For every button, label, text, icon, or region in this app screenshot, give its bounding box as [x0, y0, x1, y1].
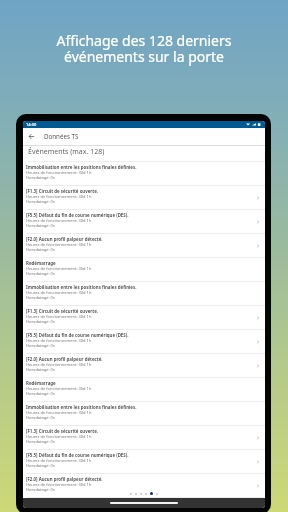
staticText: Données TS [44, 132, 79, 140]
staticText: Heures de fonctionnement: 30d 1h [26, 266, 92, 271]
button[interactable]: Immobilisation entre les positions final… [23, 402, 265, 426]
staticText: Heures de fonctionnement: 30d 1h [26, 218, 92, 223]
button[interactable]: [F1.3] Circuit de sécurité ouverte. [23, 426, 265, 450]
staticText: Horodatage: 0s [26, 439, 55, 444]
staticText: Heures de fonctionnement: 30d 1h [26, 362, 92, 367]
staticText: [F2.0] Aucun profil palpeur détecté. [26, 476, 103, 482]
staticText: [F5.5] Défaut du fin de course numérique… [26, 332, 129, 338]
staticText: Immobilisation entre les positions final… [26, 404, 137, 410]
staticText: Affichage des 128 derniers événements su… [56, 31, 232, 66]
staticText: Horodatage: 0s [26, 343, 55, 348]
staticText: Événements (max. 128) [28, 147, 105, 157]
staticText: Heures de fonctionnement: 30d 1h [26, 386, 92, 391]
staticText: Heures de fonctionnement: 30d 1h [26, 242, 92, 247]
staticText: [F5.5] Défaut du fin de course numérique… [26, 212, 129, 218]
staticText: Heures de fonctionnement: 30d 1h [26, 170, 92, 175]
button[interactable]: Immobilisation entre les positions final… [23, 282, 265, 306]
button[interactable]: [F2.0] Aucun profil palpeur détecté. [23, 354, 265, 378]
button[interactable]: [F1.3] Circuit de sécurité ouverte. [23, 186, 265, 210]
button[interactable]: Redémarrage [23, 378, 265, 402]
staticText: Horodatage: 0s [26, 223, 55, 228]
staticText: [F1.3] Circuit de sécurité ouverte. [26, 188, 99, 194]
staticText: Heures de fonctionnement: 30d 1h [26, 458, 92, 463]
staticText: Redémarrage [26, 380, 56, 386]
staticText: Horodatage: 0s [26, 487, 55, 492]
button[interactable]: [F5.5] Défaut du fin de course numérique… [23, 450, 265, 474]
staticText: Heures de fonctionnement: 30d 1h [26, 434, 92, 439]
staticText: Horodatage: 0s [26, 295, 55, 300]
staticText: Heures de fonctionnement: 30d 1h [26, 314, 92, 319]
staticText: Horodatage: 0s [26, 391, 55, 396]
button[interactable]: [F2.0] Aucun profil palpeur détecté. [23, 474, 265, 498]
staticText: [F5.5] Défaut du fin de course numérique… [26, 452, 129, 458]
staticText: [F2.0] Aucun profil palpeur détecté. [26, 236, 103, 242]
staticText: Horodatage: 0s [26, 271, 55, 276]
staticText: Heures de fonctionnement: 30d 1h [26, 194, 92, 199]
staticText: Heures de fonctionnement: 30d 1h [26, 410, 92, 415]
staticText: Immobilisation entre les positions final… [26, 284, 137, 290]
staticText: [F2.0] Aucun profil palpeur détecté. [26, 356, 103, 362]
button[interactable]: Retour [23, 128, 40, 145]
button[interactable]: [F5.5] Défaut du fin de course numérique… [23, 210, 265, 234]
staticText: 14:00 [26, 122, 37, 127]
staticText: Immobilisation entre les positions final… [26, 164, 137, 170]
staticText: Horodatage: 0s [26, 175, 55, 180]
staticText: Heures de fonctionnement: 30d 1h [26, 482, 92, 487]
button[interactable]: [F2.0] Aucun profil palpeur détecté. [23, 234, 265, 258]
staticText: Horodatage: 0s [26, 319, 55, 324]
staticText: [F1.3] Circuit de sécurité ouverte. [26, 308, 99, 314]
button[interactable]: [F1.3] Circuit de sécurité ouverte. [23, 306, 265, 330]
staticText: Heures de fonctionnement: 30d 1h [26, 290, 92, 295]
staticText: [F1.3] Circuit de sécurité ouverte. [26, 428, 99, 434]
staticText: Horodatage: 0s [26, 463, 55, 468]
staticText: Horodatage: 0s [26, 199, 55, 204]
staticText: Horodatage: 0s [26, 247, 55, 252]
button[interactable]: Immobilisation entre les positions final… [23, 162, 265, 186]
staticText: Heures de fonctionnement: 30d 1h [26, 338, 92, 343]
staticText: Horodatage: 0s [26, 367, 55, 372]
staticText: Redémarrage [26, 260, 56, 266]
staticText: Horodatage: 0s [26, 415, 55, 420]
button[interactable]: Redémarrage [23, 258, 265, 282]
button[interactable]: [F5.5] Défaut du fin de course numérique… [23, 330, 265, 354]
